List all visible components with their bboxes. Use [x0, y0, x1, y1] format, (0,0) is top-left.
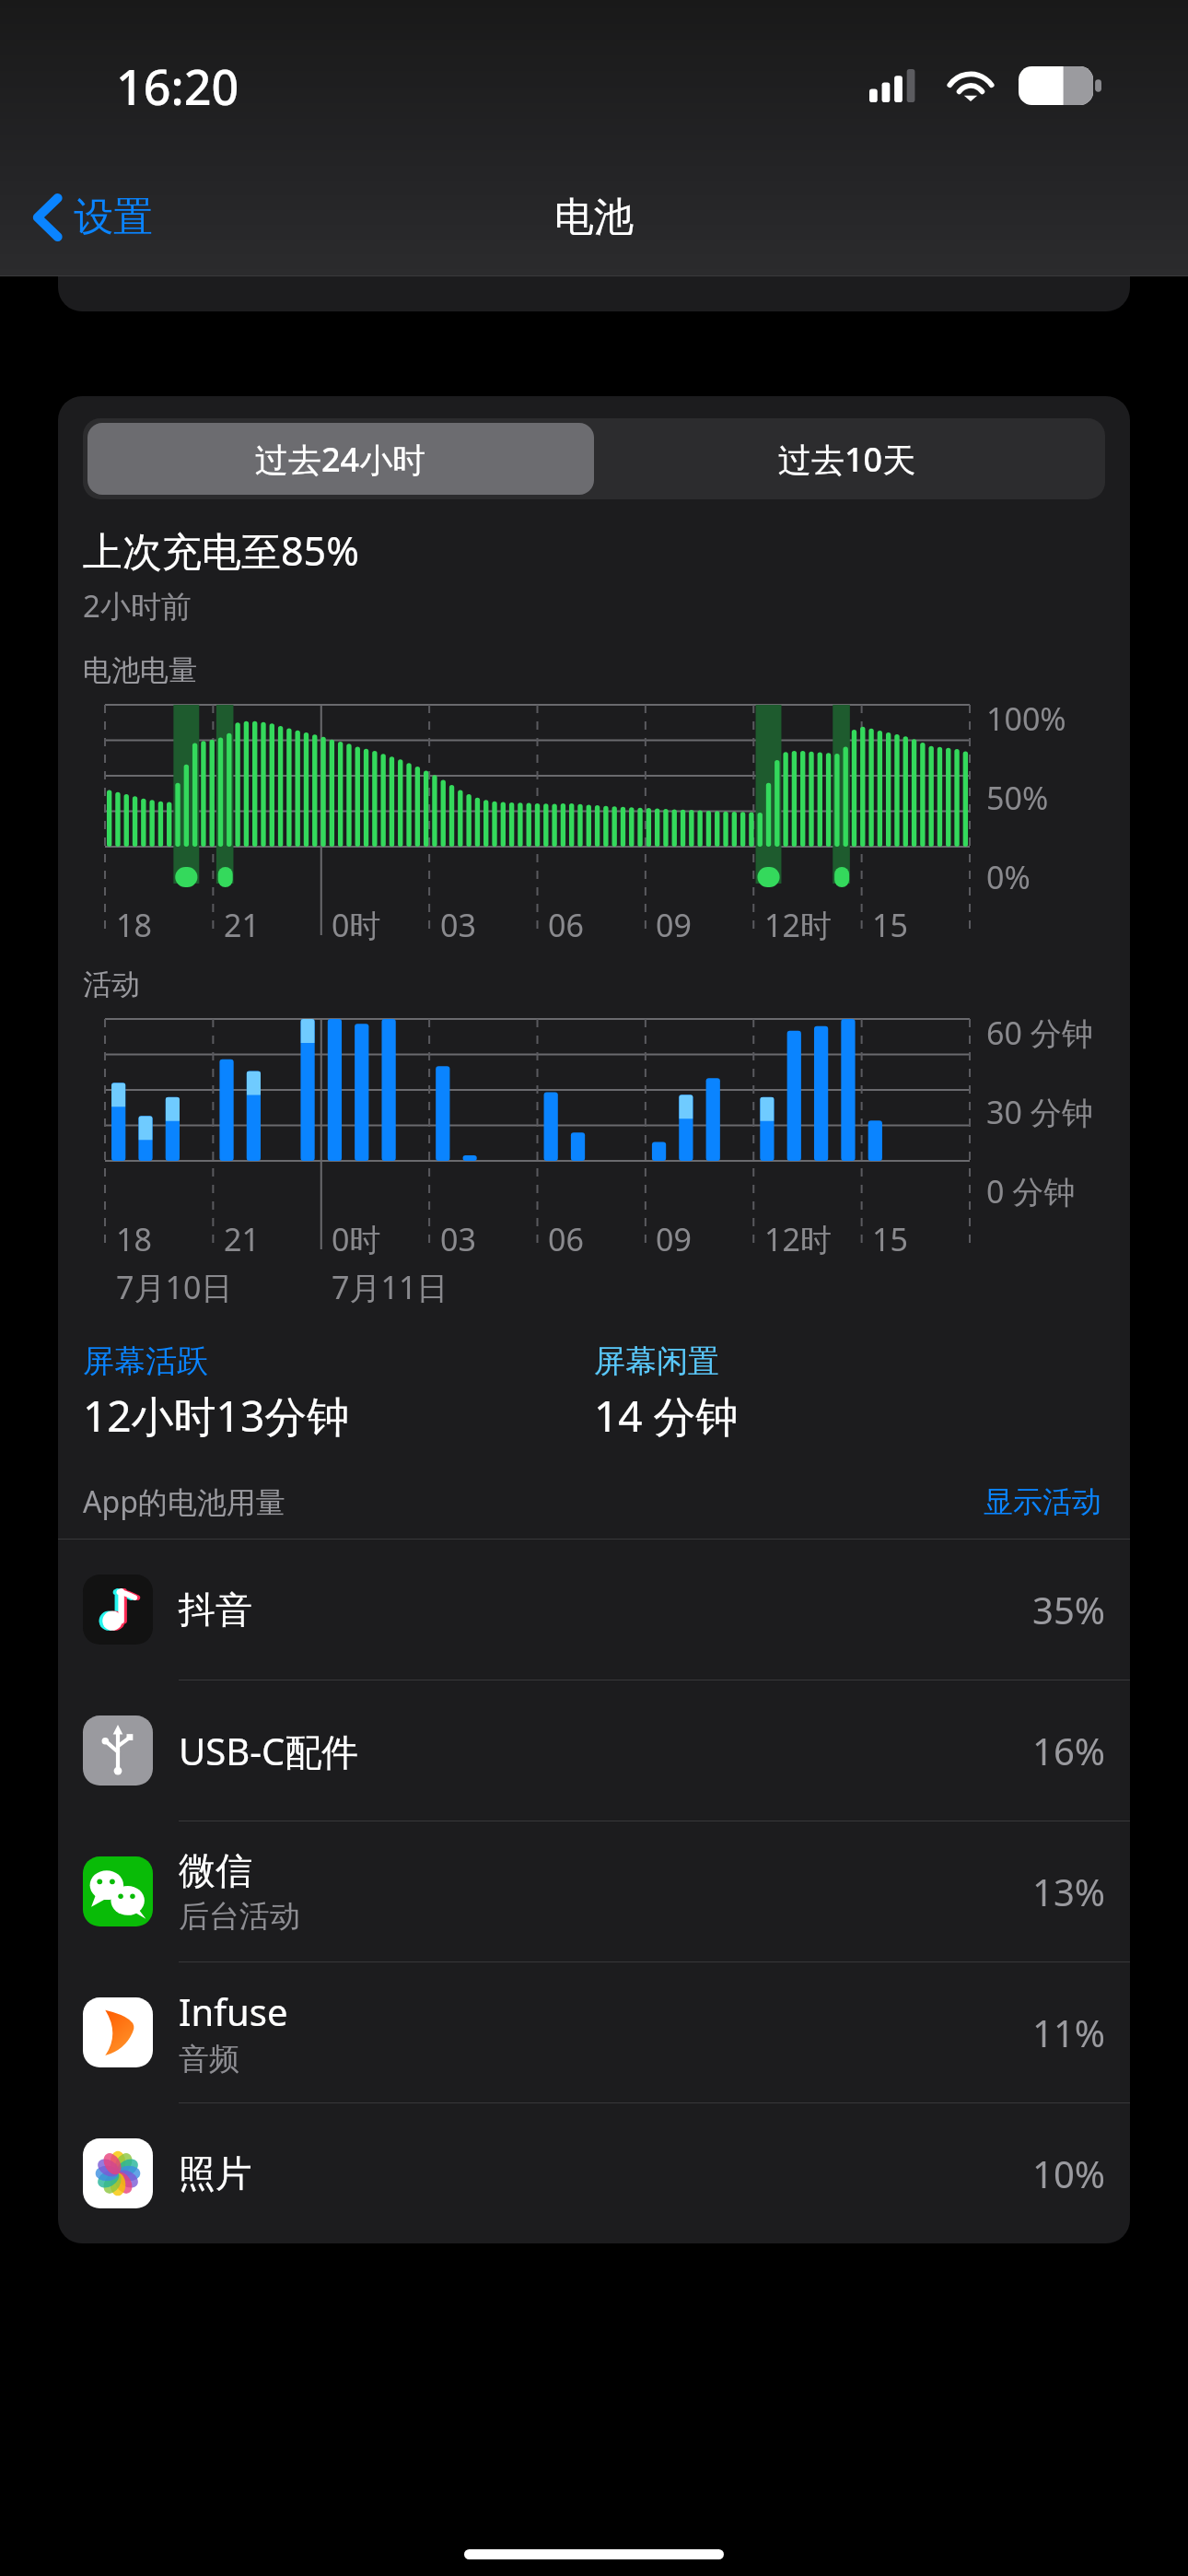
staticText: 音频	[179, 2040, 239, 2078]
staticText: 12小时13分钟	[83, 1387, 350, 1445]
staticText: 设置	[74, 193, 153, 242]
other: Back	[35, 195, 61, 240]
staticText: 18	[116, 904, 152, 946]
button[interactable]: 抖音	[58, 1540, 1130, 1680]
button[interactable]: 过去10天	[594, 423, 1101, 495]
staticText: 2小时前	[83, 585, 192, 626]
staticText: 60 分钟	[986, 1012, 1093, 1054]
button[interactable]: Back	[28, 183, 160, 252]
staticText: 活动	[83, 966, 140, 1002]
button[interactable]: 照片	[58, 2103, 1130, 2243]
button[interactable]: 过去24小时	[87, 423, 594, 495]
staticText: 09	[656, 1218, 692, 1260]
staticText: App的电池用量	[83, 1481, 285, 1522]
staticText: 0%	[986, 856, 1031, 898]
staticText: 09	[656, 904, 692, 946]
staticText: 03	[440, 1218, 476, 1260]
staticText: 抖音	[179, 1587, 252, 1633]
button[interactable]: Infuse	[58, 1962, 1130, 2103]
staticText: 微信	[179, 1847, 252, 1893]
staticText: 06	[548, 904, 584, 946]
staticText: 后台活动	[179, 1897, 300, 1936]
button[interactable]: 微信	[58, 1821, 1130, 1962]
staticText: 16%	[1032, 1726, 1105, 1775]
staticText: 16:20	[116, 53, 239, 119]
staticText: 显示活动	[984, 1483, 1101, 1520]
staticText: 0时	[332, 1218, 381, 1260]
staticText: 0 分钟	[986, 1170, 1076, 1212]
staticText: 30 分钟	[986, 1091, 1093, 1133]
staticText: 50%	[986, 777, 1049, 819]
staticText: 15	[872, 904, 908, 946]
staticText: 屏幕活跃	[83, 1341, 208, 1381]
staticText: 0时	[332, 904, 381, 946]
staticText: Infuse	[179, 1986, 288, 2036]
staticText: 7月10日	[116, 1266, 233, 1308]
staticText: 03	[440, 904, 476, 946]
staticText: 18	[116, 1218, 152, 1260]
staticText: 过去24小时	[255, 437, 426, 482]
staticText: 电池电量	[83, 652, 197, 688]
staticText: 电池	[554, 193, 634, 242]
staticText: 11%	[1032, 2008, 1105, 2057]
staticText: 10%	[1032, 2149, 1105, 2198]
staticText: USB-C配件	[179, 1726, 359, 1776]
staticText: 上次充电至85%	[83, 523, 359, 578]
staticText: 100%	[986, 697, 1066, 740]
button[interactable]: 显示活动	[980, 1480, 1105, 1524]
staticText: 屏幕闲置	[594, 1341, 719, 1381]
staticText: 06	[548, 1218, 584, 1260]
staticText: 13%	[1032, 1867, 1105, 1916]
staticText: 7月11日	[332, 1266, 448, 1308]
staticText: 35%	[1032, 1585, 1105, 1634]
staticText: 15	[872, 1218, 908, 1260]
staticText: 过去10天	[778, 437, 916, 482]
button[interactable]: USB-C配件	[58, 1680, 1130, 1821]
staticText: 21	[224, 1218, 260, 1260]
staticText: 21	[224, 904, 260, 946]
staticText: 照片	[179, 2150, 252, 2196]
staticText: 12时	[764, 904, 832, 946]
staticText: 14 分钟	[594, 1387, 739, 1445]
staticText: 12时	[764, 1218, 832, 1260]
